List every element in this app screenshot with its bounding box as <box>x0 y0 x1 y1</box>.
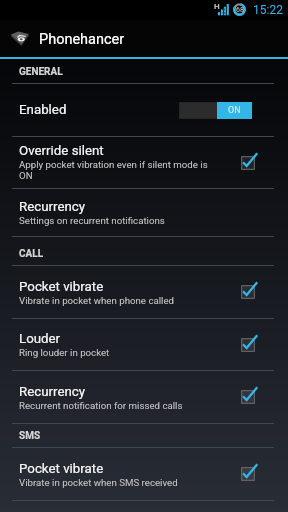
staticText: SMS <box>19 430 41 442</box>
staticText: Pocket vibrate <box>19 461 104 477</box>
staticText: Pocket vibrate <box>19 279 104 295</box>
button[interactable]: Pocket vibrate <box>0 448 288 501</box>
button[interactable]: Toggle option <box>239 388 257 406</box>
other: Battery <box>233 3 246 16</box>
staticText: Vibrate in pocket when phone called <box>19 295 175 306</box>
staticText: Recurrency <box>19 199 86 215</box>
staticText: 68 <box>236 6 244 14</box>
button[interactable]: Pocket vibrate <box>0 266 288 319</box>
staticText: CALL <box>19 248 44 260</box>
staticText: Phonehancer <box>39 31 125 48</box>
button[interactable]: Override silent <box>0 137 288 189</box>
button[interactable]: Toggle option <box>239 465 257 483</box>
button[interactable]: Louder <box>0 319 288 371</box>
button[interactable]: Recurrency <box>0 371 288 424</box>
button[interactable]: Toggle option <box>239 154 257 172</box>
staticText: ON <box>228 105 241 116</box>
staticText: Recurrent notification for missed calls <box>19 400 183 411</box>
staticText: 15:22 <box>253 3 283 17</box>
other: Signal strength <box>218 4 229 16</box>
button[interactable]: Enabled <box>0 84 288 137</box>
other: App icon <box>11 30 29 46</box>
button[interactable]: Recurrency <box>0 189 288 237</box>
staticText: Settings on recurrent notifications <box>19 215 165 226</box>
staticText: Enabled <box>19 102 67 118</box>
staticText: Apply pocket vibration even if silent mo… <box>19 159 223 182</box>
staticText: H <box>214 2 220 11</box>
staticText: Recurrency <box>19 384 86 400</box>
button[interactable]: App icon <box>0 20 288 57</box>
staticText: Louder <box>19 331 61 347</box>
button[interactable]: Toggle option <box>239 283 257 301</box>
staticText: Vibrate in pocket when SMS received <box>19 477 178 488</box>
staticText: Ring louder in pocket <box>19 347 110 358</box>
button[interactable]: Enabled toggle <box>179 102 252 119</box>
staticText: GENERAL <box>19 66 63 78</box>
button[interactable]: Toggle option <box>239 336 257 354</box>
staticText: Override silent <box>19 143 104 159</box>
